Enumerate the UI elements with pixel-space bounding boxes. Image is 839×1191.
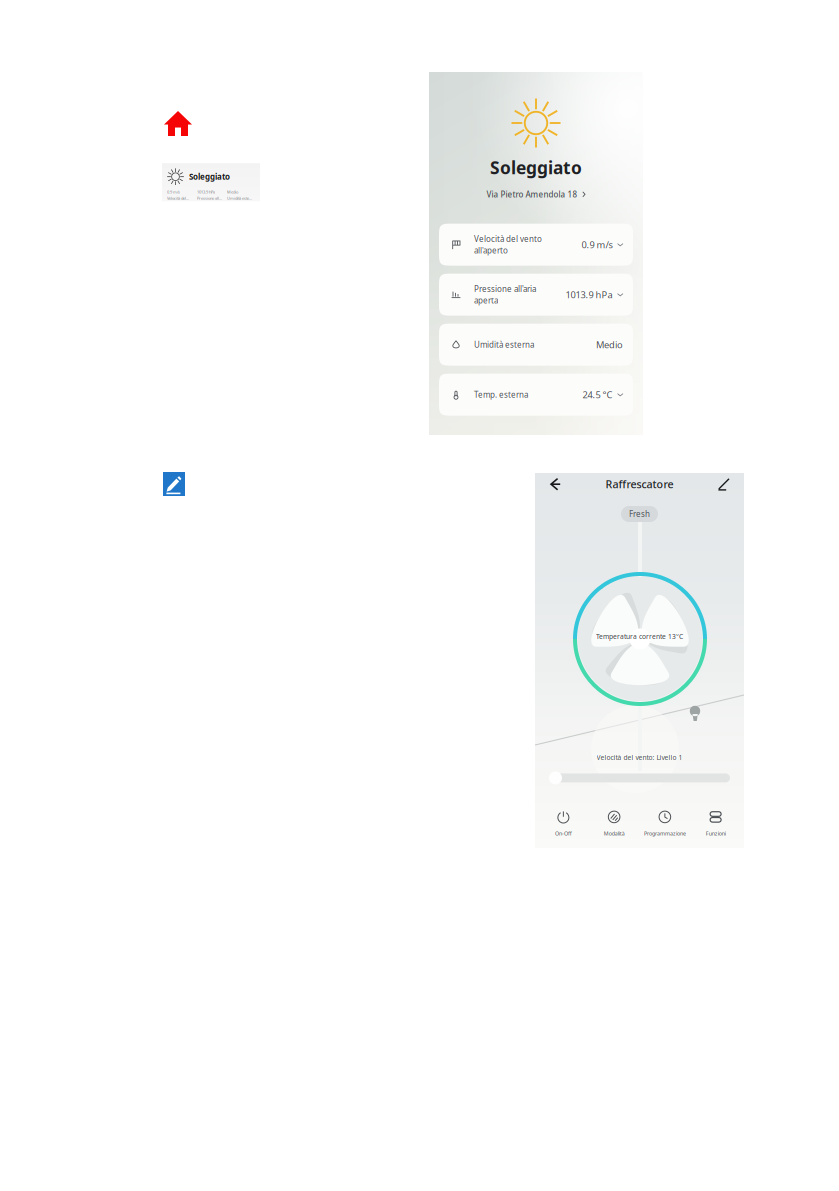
button[interactable]: Temp. esterna [439,374,633,416]
staticText: Umidità este... [227,195,252,201]
button[interactable]: Back [544,473,566,495]
button[interactable]: Fresh [621,506,658,522]
button[interactable]: Pressione all'aria [439,274,633,316]
staticText: 0.9 m/s [581,238,612,251]
staticText: Medio [596,338,623,351]
staticText: Soleggiato [189,171,230,182]
button[interactable]: Modalità [589,809,640,837]
staticText: all'aperto [474,245,508,256]
staticText: 24.5 °C [582,388,612,401]
staticText: 1013.9 hPa [197,189,215,194]
staticText: Soleggiato [490,156,582,179]
staticText: Fresh [629,509,650,519]
staticText: Umidità esterna [474,339,534,350]
staticText: Velocità del... [167,195,189,201]
button[interactable]: Home [164,111,192,136]
staticText: Pressione all... [197,195,222,201]
staticText: Temperatura corrente 13°C [596,632,683,641]
staticText: Raffrescatore [605,477,673,491]
staticText: aperta [474,295,498,306]
button[interactable]: Programmazione [639,809,690,837]
staticText: Temp. esterna [474,389,528,400]
button[interactable]: Edit [713,473,735,495]
staticText: Pressione all'aria [474,283,536,294]
button[interactable]: Edit [163,472,185,496]
staticText: 1013.9 hPa [565,288,612,301]
button[interactable]: Umidità esterna [439,324,633,366]
staticText: Funzioni [706,830,726,837]
staticText: Velocità del vento [474,233,542,244]
staticText: 0.9 m/s [167,189,180,194]
button[interactable]: Funzioni [690,809,741,837]
staticText: On-Off [555,830,572,837]
button[interactable]: Velocità del vento [439,224,633,266]
staticText: Via Pietro Amendola 18 [486,189,577,200]
staticText: Medio [227,189,238,194]
staticText: Velocità del vento: Livello 1 [596,753,682,762]
staticText: Programmazione [644,830,686,837]
button[interactable]: On-Off [538,809,589,837]
staticText: Modalità [604,830,625,837]
button[interactable]: Via Pietro Amendola 18 [486,189,585,200]
